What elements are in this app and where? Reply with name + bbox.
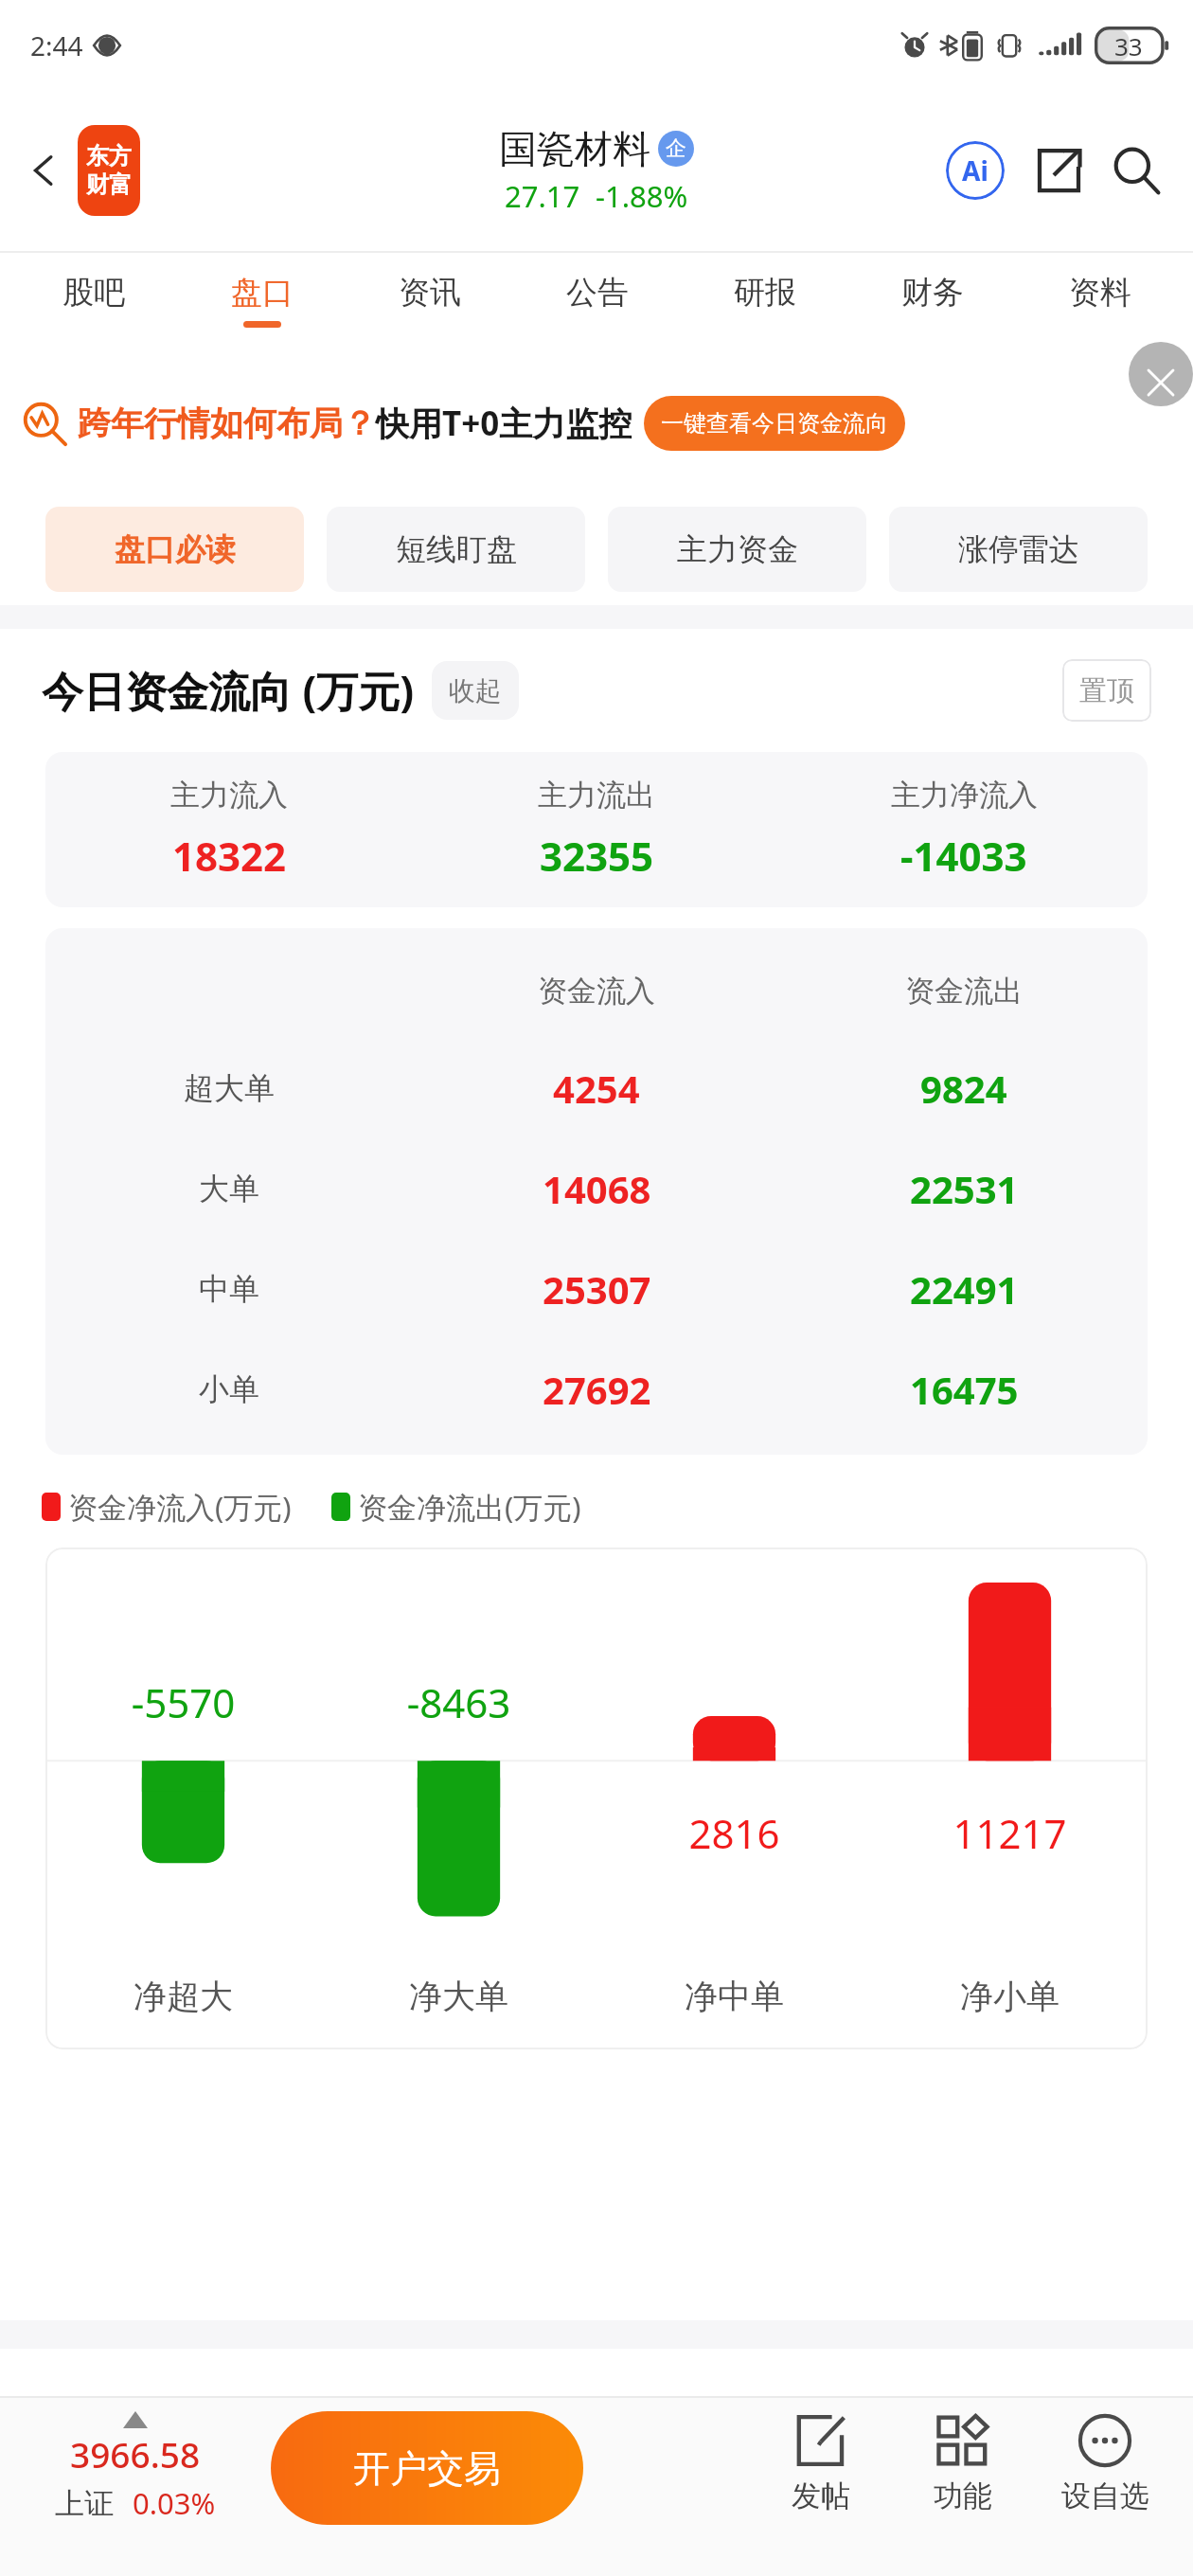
button[interactable]: 资金流入	[45, 928, 1148, 1455]
staticText: 功能	[934, 2478, 992, 2514]
button[interactable]: 置顶	[1062, 659, 1151, 722]
staticText: 27.17	[505, 176, 580, 216]
button[interactable]: 功能	[892, 2398, 1034, 2576]
staticText: 研报	[734, 273, 796, 313]
staticText: 主力资金	[677, 530, 798, 568]
staticText: 财务	[901, 273, 964, 313]
staticText: 净大单	[409, 1976, 508, 2017]
button[interactable]: 3966.58	[17, 2411, 254, 2523]
staticText: 净超大	[134, 1976, 233, 2017]
staticText: 一键查看今日资金流向	[661, 409, 888, 438]
staticText: 资讯	[399, 273, 461, 313]
staticText: 今日资金流向 (万元)	[42, 662, 415, 719]
staticText: 0.03%	[133, 2483, 216, 2523]
staticText: 超大单	[184, 1069, 275, 1107]
staticText: 资金净流出(万元)	[358, 1487, 581, 1527]
staticText: 9824	[920, 1063, 1007, 1114]
button[interactable]: 研报	[681, 253, 848, 348]
staticText: 11217	[872, 1806, 1148, 1860]
staticText: 小单	[199, 1370, 259, 1408]
button[interactable]: 发帖	[750, 2398, 892, 2576]
staticText: 上证	[55, 2485, 114, 2522]
staticText: 净小单	[960, 1976, 1059, 2017]
button[interactable]: -5570	[45, 1547, 1148, 2049]
staticText: -5570	[45, 1675, 321, 1729]
staticText: 设自选	[1061, 2478, 1149, 2514]
button[interactable]: AI assistant	[939, 134, 1011, 206]
staticText: 财富	[86, 170, 132, 199]
staticText: 3966.58	[70, 2430, 201, 2478]
staticText: 2:44	[30, 27, 83, 63]
staticText: 16475	[910, 1364, 1019, 1415]
staticText: 22491	[910, 1263, 1019, 1315]
button[interactable]: Back	[17, 143, 72, 198]
staticText: 中单	[199, 1270, 259, 1308]
staticText: 短线盯盘	[396, 530, 517, 568]
staticText: 2816	[596, 1806, 872, 1860]
staticText: 涨停雷达	[958, 530, 1079, 568]
button[interactable]: 涨停雷达	[889, 507, 1148, 592]
staticText: 跨年行情如何布局？	[78, 402, 376, 444]
staticText: 25307	[543, 1263, 651, 1315]
staticText: Ai	[962, 152, 988, 188]
button[interactable]: 盘口必读	[45, 507, 304, 592]
button[interactable]: 国瓷材料	[499, 125, 694, 216]
staticText: 公告	[566, 273, 629, 313]
staticText: 22531	[910, 1163, 1019, 1214]
button[interactable]: 跨年行情如何布局？	[0, 363, 1193, 484]
button[interactable]: 财务	[848, 253, 1016, 348]
staticText: 国瓷材料	[499, 125, 650, 172]
staticText: 置顶	[1079, 673, 1134, 708]
staticText: 32355	[540, 829, 654, 883]
staticText: 企	[666, 135, 686, 162]
staticText: 发帖	[792, 2478, 850, 2514]
button[interactable]: 资讯	[346, 253, 513, 348]
staticText: 主力流入	[170, 777, 288, 814]
staticText: -8463	[321, 1675, 596, 1729]
staticText: 14068	[543, 1163, 651, 1214]
staticText: 27692	[543, 1364, 651, 1415]
button[interactable]: 公告	[513, 253, 681, 348]
button[interactable]: Share	[1023, 134, 1095, 206]
button[interactable]: 开户交易	[271, 2411, 583, 2525]
staticText: 东方	[86, 142, 132, 170]
staticText: 资料	[1069, 273, 1131, 313]
staticText: 大单	[199, 1170, 259, 1207]
button[interactable]: East Money home	[78, 125, 140, 216]
staticText: 资金流入	[538, 973, 655, 1010]
staticText: 主力净流入	[891, 777, 1038, 814]
button[interactable]: 收起	[432, 661, 519, 720]
button[interactable]: 股吧	[9, 253, 178, 348]
button[interactable]: Close ad	[1129, 342, 1193, 406]
staticText: 快用T+0主力监控	[376, 401, 632, 446]
staticText: 资金流出	[905, 973, 1023, 1010]
button[interactable]: 盘口	[178, 253, 346, 348]
button[interactable]: Search	[1100, 134, 1172, 206]
button[interactable]: 资料	[1016, 253, 1184, 348]
staticText: -1.88%	[596, 176, 688, 216]
button[interactable]: 一键查看今日资金流向	[644, 396, 905, 451]
staticText: -14033	[900, 829, 1027, 883]
staticText: 开户交易	[353, 2445, 501, 2492]
staticText: 资金净流入(万元)	[68, 1487, 292, 1527]
staticText: 18322	[172, 829, 287, 883]
button[interactable]: 短线盯盘	[327, 507, 585, 592]
staticText: 盘口	[231, 273, 294, 313]
staticText: 33	[1114, 29, 1143, 63]
staticText: 盘口必读	[115, 530, 236, 568]
staticText: 收起	[449, 674, 502, 707]
button[interactable]: 主力流入	[45, 752, 1148, 907]
button[interactable]: 设自选	[1034, 2398, 1176, 2576]
staticText: 4254	[553, 1063, 640, 1114]
button[interactable]: 主力资金	[608, 507, 866, 592]
staticText: 净中单	[685, 1976, 784, 2017]
staticText: 主力流出	[538, 777, 655, 814]
staticText: 股吧	[62, 273, 125, 313]
